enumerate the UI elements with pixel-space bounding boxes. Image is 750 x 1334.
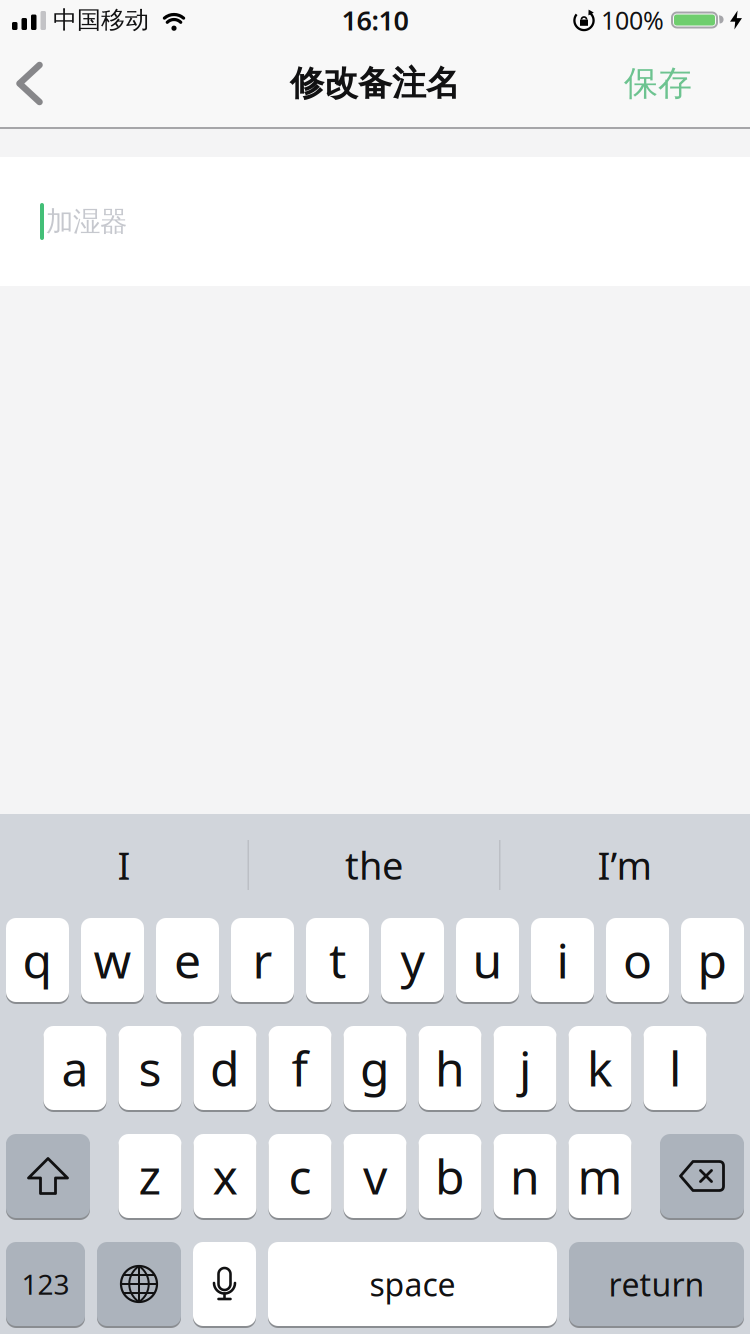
button[interactable]: 123 bbox=[6, 1242, 85, 1326]
staticText: f bbox=[291, 1035, 308, 1101]
button[interactable]: w bbox=[81, 918, 144, 1002]
staticText: l bbox=[669, 1035, 681, 1101]
button[interactable]: g bbox=[343, 1026, 406, 1110]
button[interactable]: Dictate bbox=[193, 1242, 256, 1326]
button[interactable]: y bbox=[381, 918, 444, 1002]
staticText: h bbox=[435, 1035, 465, 1101]
staticText: 中国移动 bbox=[53, 5, 149, 35]
button[interactable]: e bbox=[156, 918, 219, 1002]
button[interactable]: s bbox=[118, 1026, 181, 1110]
staticText: y bbox=[400, 927, 424, 993]
staticText: i bbox=[556, 927, 568, 993]
button[interactable]: f bbox=[268, 1026, 331, 1110]
button[interactable]: I’m bbox=[500, 814, 750, 902]
staticText: return bbox=[608, 1262, 704, 1306]
staticText: 修改备注名 bbox=[290, 62, 460, 105]
button[interactable]: Shift bbox=[6, 1134, 90, 1218]
staticText: t bbox=[329, 927, 346, 993]
button[interactable]: Delete bbox=[660, 1134, 744, 1218]
staticText: s bbox=[138, 1035, 161, 1101]
button[interactable]: 保存 bbox=[624, 62, 750, 105]
button[interactable]: k bbox=[568, 1026, 631, 1110]
button[interactable]: v bbox=[343, 1134, 406, 1218]
button[interactable]: I bbox=[0, 814, 248, 902]
staticText: m bbox=[577, 1143, 622, 1209]
staticText: x bbox=[212, 1143, 237, 1209]
staticText: o bbox=[623, 927, 652, 993]
staticText: I bbox=[117, 839, 130, 891]
staticText: u bbox=[472, 927, 502, 993]
staticText: space bbox=[369, 1262, 455, 1306]
button[interactable]: h bbox=[418, 1026, 481, 1110]
staticText: e bbox=[174, 927, 201, 993]
staticText: 123 bbox=[21, 1265, 69, 1303]
button[interactable]: 备注名输入框 bbox=[0, 157, 750, 286]
button[interactable]: z bbox=[118, 1134, 181, 1218]
staticText: I’m bbox=[597, 839, 652, 891]
staticText: c bbox=[288, 1143, 311, 1209]
button[interactable]: return bbox=[569, 1242, 744, 1326]
staticText: v bbox=[363, 1143, 387, 1209]
staticText: w bbox=[93, 927, 131, 993]
button[interactable]: u bbox=[456, 918, 519, 1002]
button[interactable]: a bbox=[43, 1026, 106, 1110]
button[interactable]: r bbox=[231, 918, 294, 1002]
button[interactable]: x bbox=[193, 1134, 256, 1218]
button[interactable]: d bbox=[193, 1026, 256, 1110]
button[interactable]: l bbox=[643, 1026, 706, 1110]
button[interactable]: b bbox=[418, 1134, 481, 1218]
button[interactable]: i bbox=[531, 918, 594, 1002]
staticText: k bbox=[587, 1035, 613, 1101]
staticText: a bbox=[61, 1035, 88, 1101]
staticText: j bbox=[519, 1035, 531, 1101]
staticText: b bbox=[435, 1143, 465, 1209]
staticText: r bbox=[252, 927, 272, 993]
button[interactable]: t bbox=[306, 918, 369, 1002]
staticText: z bbox=[138, 1143, 161, 1209]
staticText: the bbox=[345, 839, 403, 891]
button[interactable]: c bbox=[268, 1134, 331, 1218]
button[interactable]: n bbox=[493, 1134, 556, 1218]
button[interactable]: q bbox=[6, 918, 69, 1002]
button[interactable]: m bbox=[568, 1134, 631, 1218]
staticText: q bbox=[22, 927, 52, 993]
staticText: 加湿器 bbox=[46, 204, 127, 239]
staticText: n bbox=[510, 1143, 540, 1209]
button[interactable]: Next keyboard bbox=[97, 1242, 181, 1326]
staticText: 100% bbox=[601, 3, 664, 37]
button[interactable]: space bbox=[268, 1242, 557, 1326]
staticText: g bbox=[360, 1035, 390, 1101]
staticText: 保存 bbox=[624, 62, 692, 105]
button[interactable]: p bbox=[681, 918, 744, 1002]
button[interactable]: o bbox=[606, 918, 669, 1002]
staticText: 16:10 bbox=[341, 2, 408, 38]
button[interactable]: the bbox=[248, 814, 500, 902]
button[interactable]: Back bbox=[0, 61, 65, 105]
staticText: p bbox=[697, 927, 727, 993]
button[interactable]: j bbox=[493, 1026, 556, 1110]
staticText: d bbox=[210, 1035, 240, 1101]
